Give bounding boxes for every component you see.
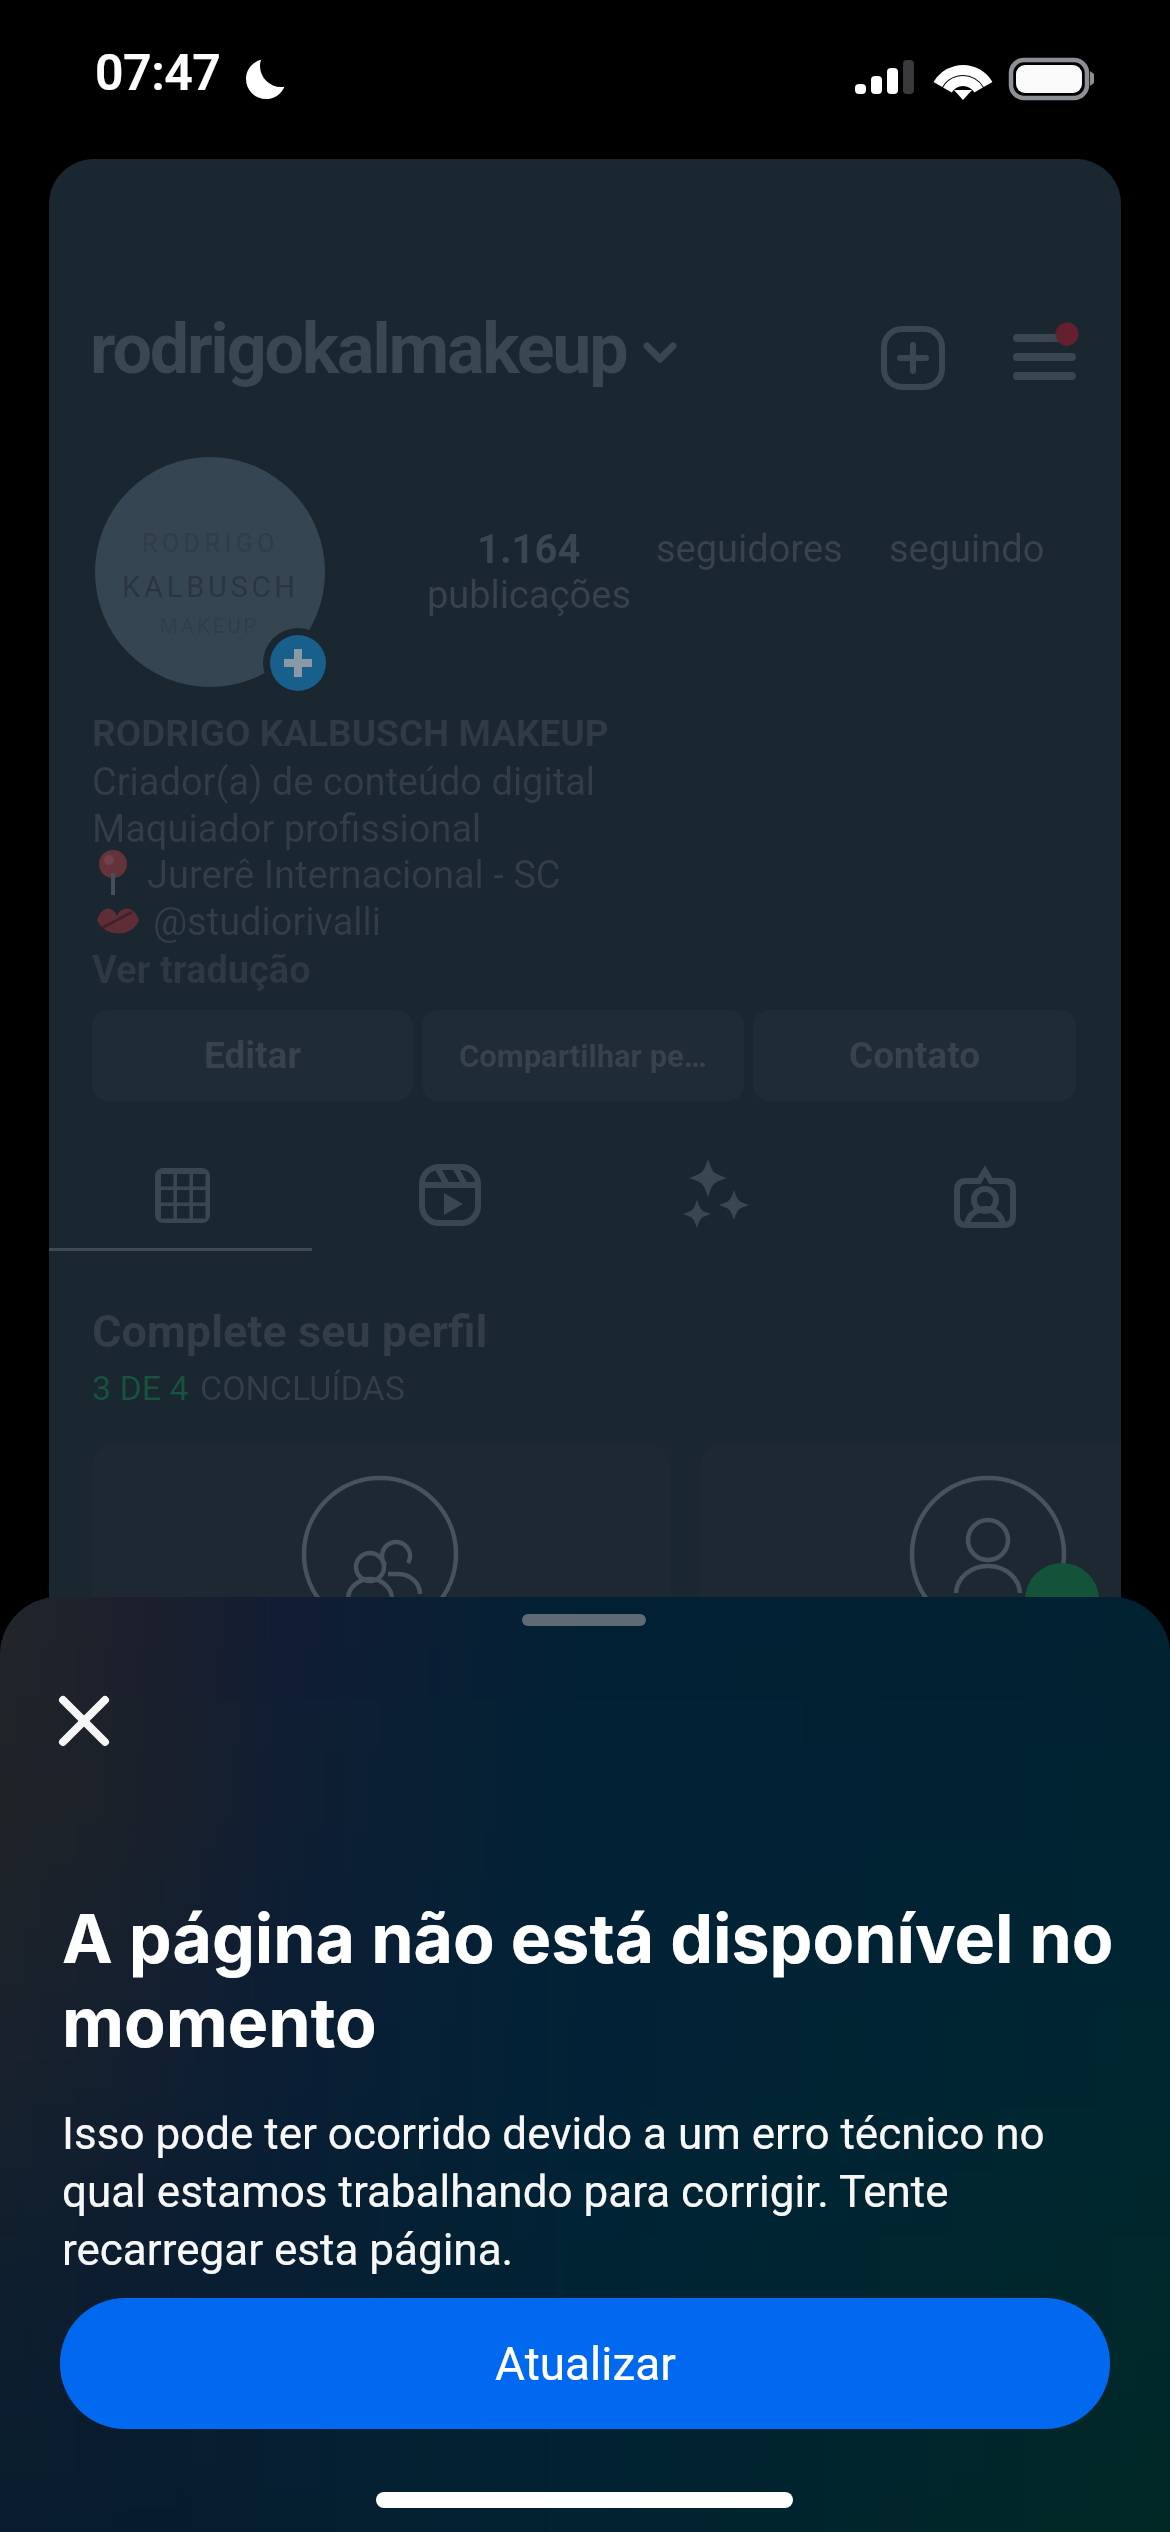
button[interactable]: Foto do perfil — [95, 457, 325, 687]
staticText: Criador(a) de conteúdo digital — [92, 760, 596, 805]
staticText: RODRIGO KALBUSCH MAKEUP — [92, 712, 609, 755]
button[interactable]: Menu — [996, 290, 1106, 400]
button[interactable]: Atualizar — [60, 2298, 1110, 2429]
staticText: 07:47 — [95, 44, 221, 103]
button[interactable]: Marcados — [905, 1150, 1065, 1246]
button[interactable]: Contato — [753, 1010, 1076, 1101]
button[interactable]: Editar — [92, 1010, 413, 1101]
staticText: RODRIGO — [142, 529, 279, 558]
staticText: 1.164 — [477, 526, 581, 573]
button[interactable]: rodrigokalmakeup — [90, 299, 663, 399]
staticText: seguidores — [656, 527, 843, 572]
button[interactable]: Reels — [370, 1147, 530, 1243]
button[interactable]: Compartilhar pe… — [422, 1010, 744, 1101]
staticText: Compartilhar pe… — [459, 1038, 707, 1074]
staticText: Contato — [849, 1034, 981, 1077]
button[interactable]: Fechar — [36, 1673, 132, 1769]
staticText: seguindo — [889, 527, 1045, 572]
staticText: MAKEUP — [160, 614, 260, 637]
staticText: KALBUSCH — [122, 570, 299, 604]
staticText: rodrigokalmakeup — [90, 308, 627, 390]
staticText: Ver tradução — [92, 948, 311, 993]
staticText: 3 DE 4 — [92, 1368, 189, 1408]
staticText: A página não está disponível no momento — [62, 1897, 1132, 2064]
staticText: Complete seu perfil — [92, 1305, 488, 1358]
staticText: @studiorivalli — [153, 900, 382, 945]
staticText: publicações — [427, 573, 631, 618]
button[interactable]: Publicações — [103, 1148, 263, 1244]
button[interactable]: Criar — [865, 310, 961, 406]
staticText: Maquiador profissional — [92, 807, 482, 852]
staticText: Editar — [204, 1034, 301, 1077]
staticText: Atualizar — [495, 2337, 676, 2391]
staticText: Jurerê Internacional - SC — [147, 853, 561, 898]
staticText: Isso pode ter ocorrido devido a um erro … — [62, 2108, 1062, 2276]
staticText: CONCLUÍDAS — [200, 1368, 405, 1408]
button[interactable]: Destaques — [633, 1145, 793, 1241]
